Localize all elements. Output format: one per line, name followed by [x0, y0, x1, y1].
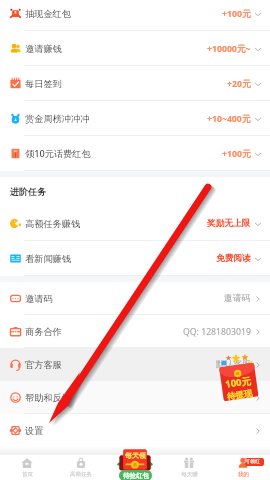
button[interactable]: 待抢红包 — [118, 448, 152, 480]
staticText: 可领红包 — [245, 458, 264, 466]
button[interactable]: 邀请赚钱 — [0, 31, 270, 66]
staticText: 高额任务 — [70, 471, 92, 478]
button[interactable]: 赏金周榜冲冲冲 — [0, 101, 270, 136]
staticText: +10000元~ — [207, 43, 251, 55]
staticText: +100元 — [222, 148, 251, 160]
staticText: 每天领 — [125, 451, 146, 460]
button[interactable]: 抽现金红包 — [0, 0, 270, 31]
button[interactable]: 邀请码 — [0, 282, 270, 315]
button[interactable]: 商务合作 — [0, 315, 270, 348]
button[interactable]: 我的 — [216, 455, 270, 480]
staticText: +100元 — [222, 8, 251, 20]
staticText: 我的 — [238, 471, 249, 478]
button[interactable]: 高额任务 — [54, 455, 108, 480]
button[interactable]: 设置 — [0, 414, 270, 447]
button[interactable]: 看新闻赚钱 — [0, 241, 270, 276]
button[interactable]: 官方客服 — [0, 348, 270, 381]
button[interactable]: 每天赚 — [162, 455, 216, 480]
staticText: 看新闻赚钱 — [25, 253, 71, 265]
staticText: 待抢红包 — [123, 472, 149, 480]
button[interactable]: 100元待提现红包 — [213, 352, 263, 402]
staticText: 每天赚 — [181, 471, 198, 478]
staticText: 赏金周榜冲冲冲 — [25, 113, 90, 125]
staticText: 高额任务赚钱 — [25, 218, 81, 230]
staticText: 待提现 — [226, 388, 254, 403]
staticText: 进阶任务 — [10, 186, 46, 197]
staticText: 邀请赚钱 — [25, 43, 62, 55]
staticText: 邀请码 — [224, 293, 251, 304]
button[interactable]: 领10元话费红包 — [0, 136, 270, 171]
staticText: 商务合作 — [25, 326, 62, 338]
button[interactable]: 帮助和反馈 — [0, 381, 270, 414]
staticText: 每日签到 — [25, 78, 62, 90]
staticText: 官方客服 — [25, 359, 62, 371]
staticText: 100元 — [224, 374, 252, 391]
staticText: 首页 — [22, 471, 33, 478]
staticText: 领10元话费红包 — [25, 147, 91, 160]
staticText: 免费阅读 — [216, 253, 251, 264]
button[interactable]: 高额任务赚钱 — [0, 206, 270, 241]
staticText: 默认客服 — [216, 359, 251, 370]
staticText: 抽现金红包 — [25, 8, 71, 20]
staticText: 奖励无上限 — [207, 218, 251, 229]
staticText: +20元 — [227, 78, 251, 90]
staticText: +10~400元 — [207, 113, 251, 125]
staticText: 设置 — [25, 425, 44, 437]
staticText: 邀请码 — [25, 293, 53, 305]
staticText: QQ: 1281803019 — [183, 326, 251, 338]
button[interactable]: 首页 — [0, 455, 54, 480]
staticText: 帮助和反馈 — [25, 392, 71, 404]
button[interactable]: 每日签到 — [0, 66, 270, 101]
